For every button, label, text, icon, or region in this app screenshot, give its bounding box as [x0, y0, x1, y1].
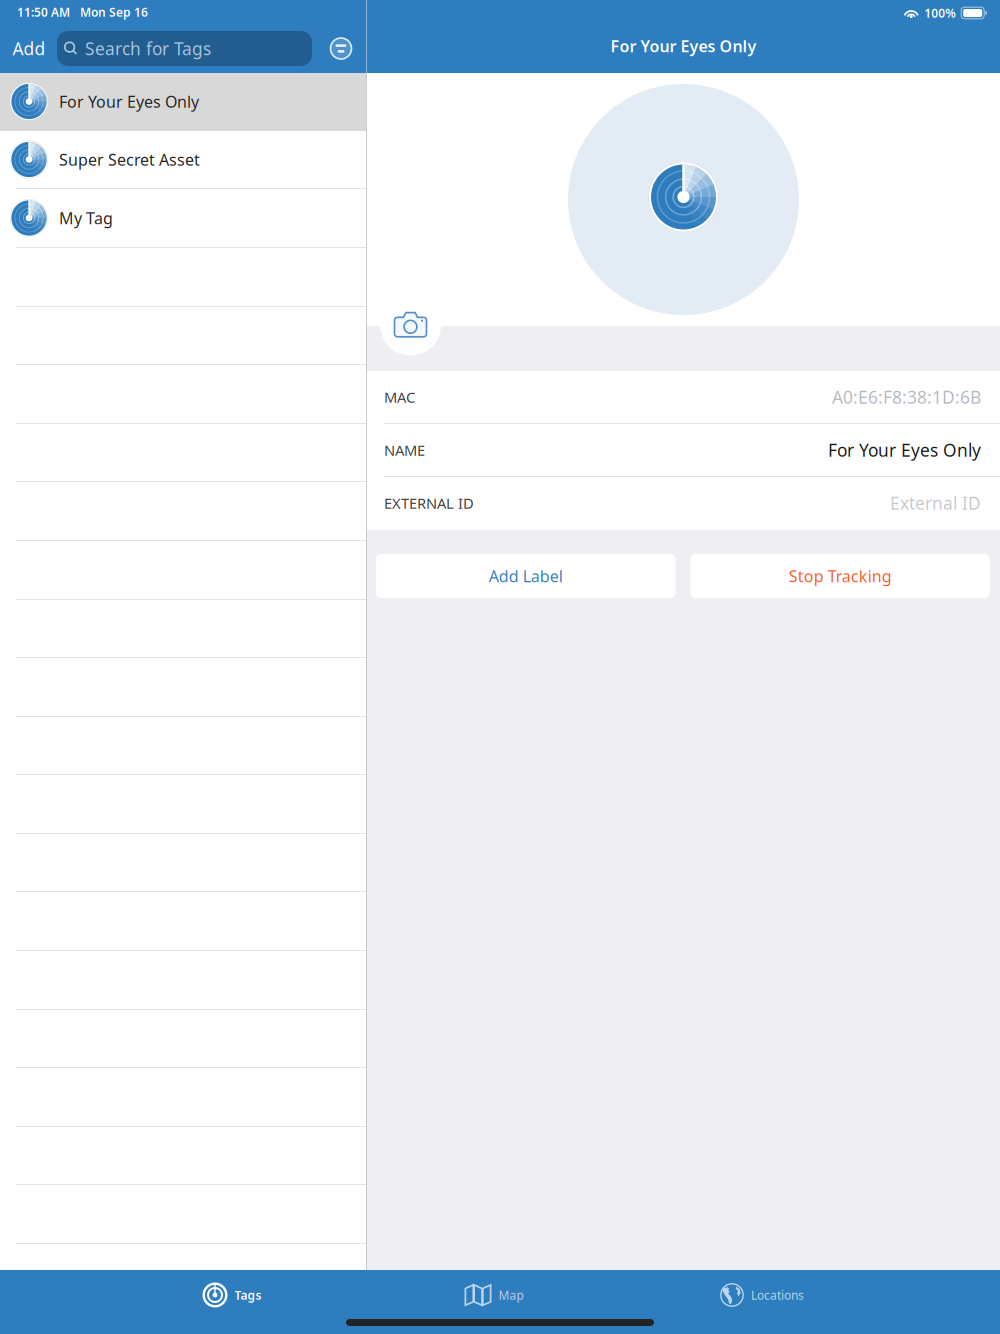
staticText: For Your Eyes Only: [610, 35, 756, 57]
staticText: For Your Eyes Only: [59, 91, 199, 112]
button[interactable]: Tags: [103, 1271, 361, 1319]
staticText: Search for Tags: [85, 37, 211, 60]
button[interactable]: Super Secret Asset: [0, 131, 366, 189]
button[interactable]: Add Label: [376, 554, 675, 598]
button[interactable]: Filter: [320, 27, 362, 69]
button[interactable]: Map: [361, 1271, 627, 1319]
button[interactable]: Locations: [627, 1271, 897, 1319]
staticText: MAC: [384, 387, 415, 407]
staticText: Stop Tracking: [789, 565, 892, 587]
button[interactable]: Stop Tracking: [690, 554, 990, 598]
staticText: 100%: [924, 5, 956, 21]
staticText: Locations: [751, 1287, 804, 1303]
staticText: Add Label: [489, 565, 563, 587]
staticText: A0:E6:F8:38:1D:6B: [832, 385, 981, 408]
staticText: Map: [498, 1287, 523, 1303]
staticText: 11:50 AM: [17, 4, 70, 20]
button[interactable]: My Tag: [0, 189, 366, 248]
staticText: Mon Sep 16: [80, 4, 148, 20]
button[interactable]: Search for Tags: [57, 31, 312, 66]
staticText: Add: [12, 37, 45, 60]
staticText: My Tag: [59, 207, 113, 229]
staticText: For Your Eyes Only: [828, 438, 981, 461]
button[interactable]: Add: [5, 31, 53, 66]
button[interactable]: For Your Eyes Only: [0, 73, 366, 131]
staticText: Tags: [234, 1287, 261, 1303]
staticText: EXTERNAL ID: [384, 493, 474, 513]
staticText: Super Secret Asset: [59, 149, 200, 170]
staticText: External ID: [890, 491, 981, 514]
staticText: NAME: [384, 440, 425, 460]
